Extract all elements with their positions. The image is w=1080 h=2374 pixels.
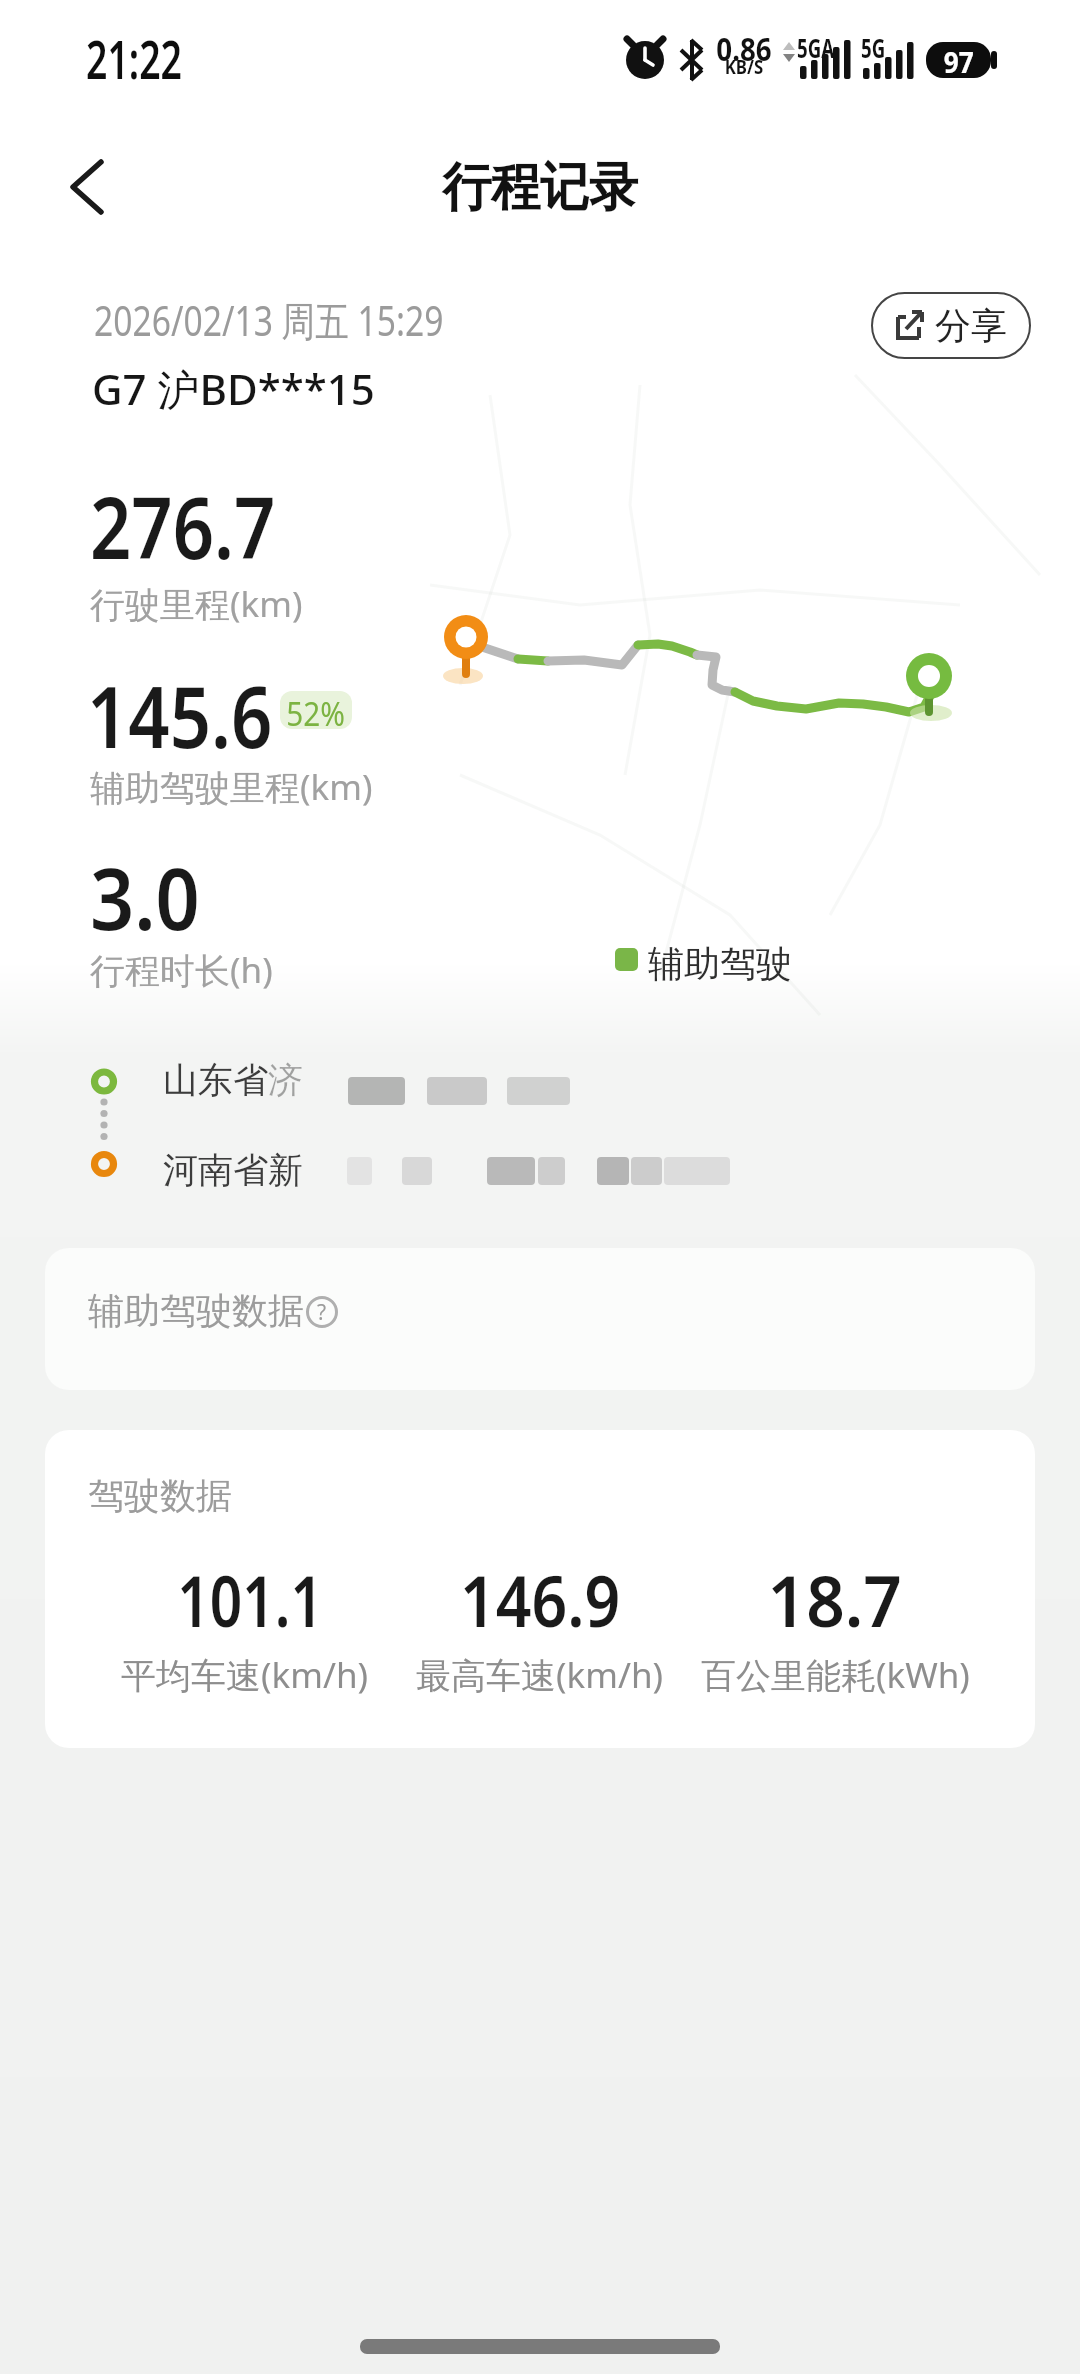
button[interactable]: 分享 [871, 292, 1031, 359]
staticText: 146.9 [460, 1551, 621, 1648]
staticText: 平均车速(km/h) [121, 1651, 369, 1699]
staticText: 河南省新 [163, 1148, 303, 1192]
staticText: 山东省 [163, 1058, 268, 1102]
staticText: 276.7 [90, 469, 276, 583]
staticText: 辅助驾驶数据 [88, 1288, 304, 1333]
button[interactable]: 辅助驾驶数据 [45, 1248, 1035, 1390]
staticText: 145.6 [87, 658, 273, 772]
staticText: 5GA [797, 30, 834, 65]
staticText: KB/S [725, 53, 763, 80]
staticText: 百公里能耗(kWh) [701, 1651, 970, 1699]
staticText: 97 [944, 42, 974, 78]
staticText: 0.86 [716, 26, 772, 71]
staticText: 5G [861, 30, 885, 65]
staticText: ? [317, 1298, 327, 1327]
staticText: 驾驶数据 [88, 1473, 232, 1518]
button[interactable] [40, 140, 130, 235]
staticText: 辅助驾驶 [648, 941, 792, 986]
staticText: 分享 [935, 303, 1007, 348]
staticText: 济 [268, 1058, 303, 1102]
staticText: 行程时长(h) [90, 946, 273, 994]
staticText: 3.0 [90, 840, 200, 954]
staticText: 辅助驾驶里程(km) [90, 763, 373, 811]
staticText: 101.1 [177, 1551, 324, 1648]
staticText: 行驶里程(km) [90, 580, 303, 628]
staticText: 最高车速(km/h) [416, 1651, 664, 1699]
staticText: 2026/02/13 周五 15:29 [94, 292, 444, 348]
staticText: 行程记录 [442, 155, 638, 221]
staticText: 21:22 [86, 23, 182, 94]
staticText: 18.7 [767, 1551, 902, 1648]
staticText: G7 沪BD***15 [92, 360, 375, 417]
staticText: 52% [286, 691, 346, 729]
